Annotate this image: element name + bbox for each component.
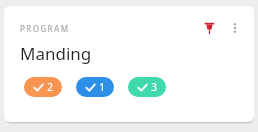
- staticText: PROGRAM: [20, 23, 70, 34]
- staticText: 1: [99, 80, 105, 94]
- button[interactable]: More options: [224, 18, 246, 38]
- button[interactable]: PROGRAM: [4, 6, 254, 122]
- button[interactable]: 1: [76, 77, 114, 97]
- staticText: Manding: [20, 42, 92, 65]
- button[interactable]: 2: [24, 77, 62, 97]
- staticText: 2: [47, 80, 53, 94]
- button[interactable]: 3: [128, 77, 166, 97]
- staticText: 3: [151, 80, 157, 94]
- button[interactable]: Pin: [198, 18, 220, 38]
